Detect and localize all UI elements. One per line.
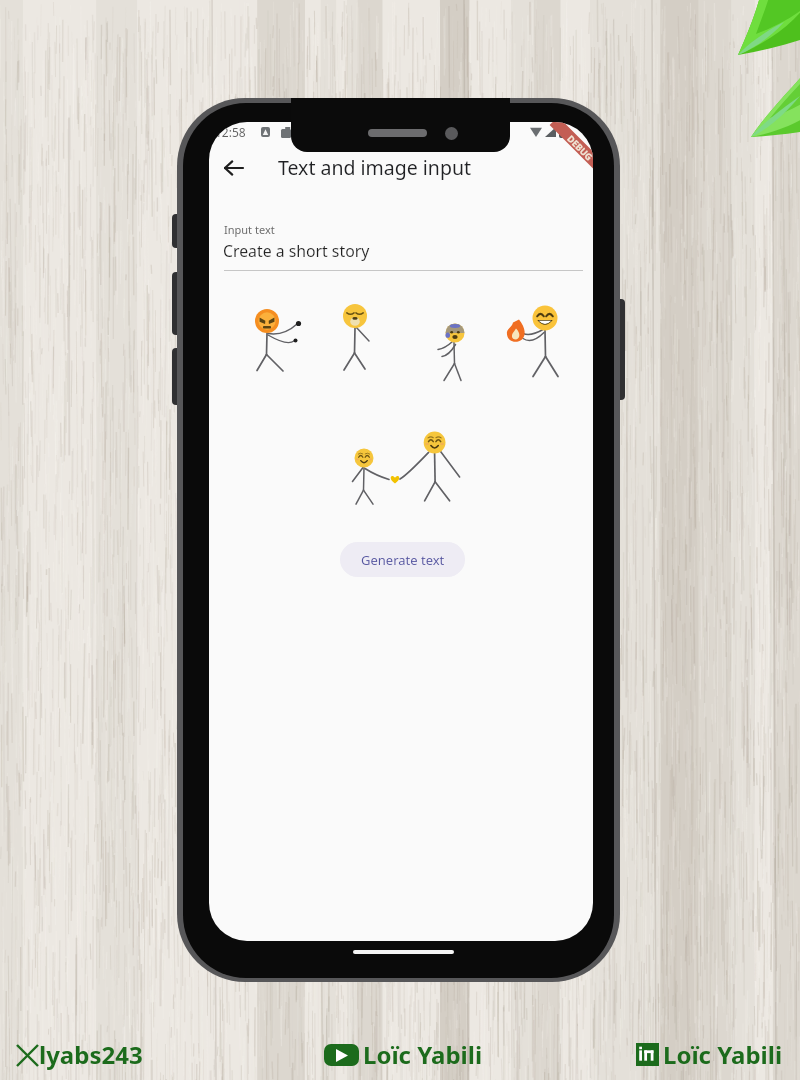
staticText: DEBUG (565, 132, 593, 163)
staticText: Loïc Yabili (663, 1038, 783, 1071)
staticText: Input text (224, 222, 275, 237)
staticText: lyabs243 (39, 1038, 143, 1071)
button[interactable]: Input text field (224, 216, 583, 271)
staticText: 12:58 (215, 124, 246, 140)
staticText: Text and image input (278, 154, 471, 181)
staticText: Generate text (361, 551, 445, 569)
staticText: Loïc Yabili (363, 1038, 483, 1071)
button[interactable]: Generate text (340, 542, 465, 577)
staticText: Create a short story (223, 240, 370, 262)
button[interactable]: Back (214, 148, 254, 188)
